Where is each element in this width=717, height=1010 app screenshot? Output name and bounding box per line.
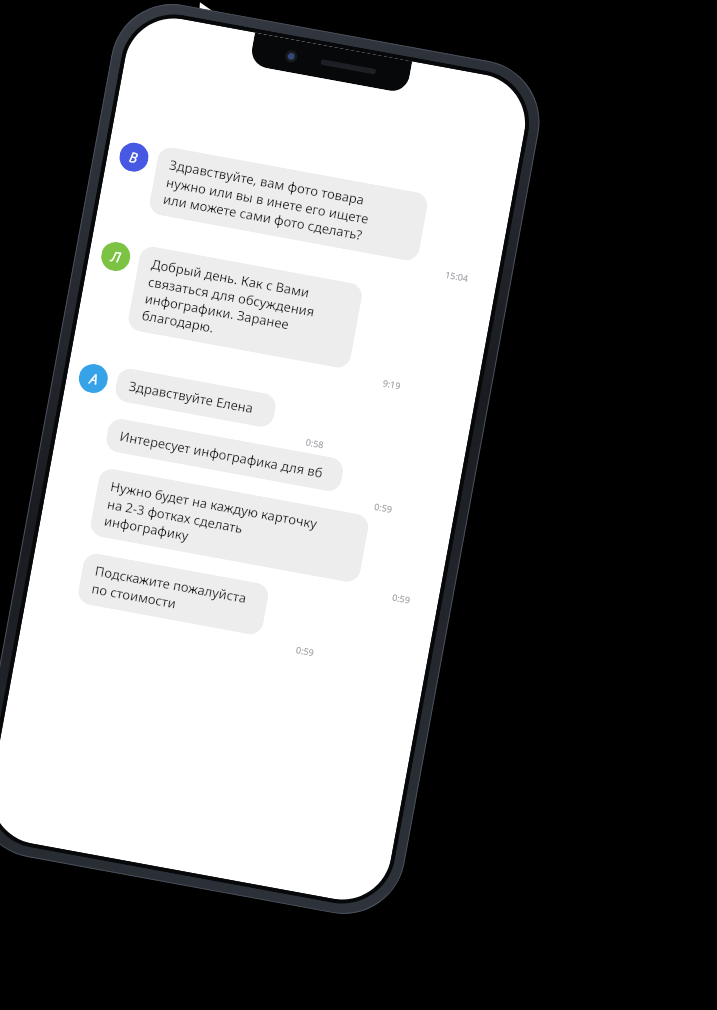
staticText: А <box>88 368 99 389</box>
button[interactable]: Интересует инфографика для вб <box>64 410 447 524</box>
button[interactable]: Нужно будет на каждую карточку на 2-3 фо… <box>49 460 437 608</box>
staticText: Добрый день. Как с Вами связаться для об… <box>140 255 319 354</box>
button[interactable]: Avatar А <box>74 360 456 473</box>
staticText: 0:59 <box>391 591 411 606</box>
other: Avatar А <box>76 362 110 395</box>
staticText: Подскажите пожалуйста по стоимости <box>90 562 248 625</box>
staticText: Л <box>110 246 123 267</box>
staticText: Здравствуйте, вам фото товара нужно или … <box>162 155 374 245</box>
staticText: 9:19 <box>382 376 402 391</box>
other: Avatar В <box>117 140 151 174</box>
staticText: Интересует инфографика для вб <box>118 427 324 482</box>
staticText: Нужно будет на каждую карточку на 2-3 фо… <box>103 477 319 567</box>
staticText: В <box>128 147 140 167</box>
button[interactable]: Avatar В <box>108 138 496 287</box>
staticText: Здравствуйте Елена <box>127 377 255 417</box>
button[interactable]: Подскажите пожалуйста по стоимости <box>37 544 422 676</box>
other: Avatar Л <box>99 240 133 273</box>
staticText: 15:04 <box>444 268 470 284</box>
staticText: 0:59 <box>295 643 315 658</box>
button[interactable]: Avatar Л <box>87 238 478 403</box>
staticText: 0:59 <box>373 500 393 515</box>
staticText: 0:58 <box>305 435 325 451</box>
